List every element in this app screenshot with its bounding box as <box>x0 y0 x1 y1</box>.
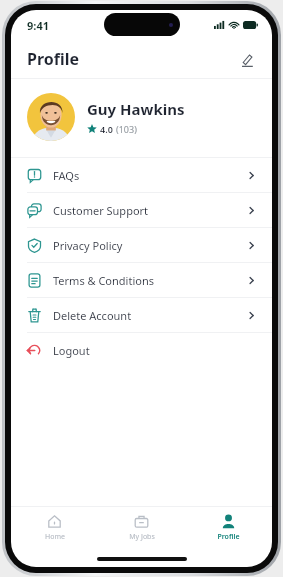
button[interactable]: Customer Support <box>11 193 272 227</box>
staticText: Logout <box>53 343 90 358</box>
button[interactable]: Terms & Conditions <box>11 263 272 297</box>
button[interactable]: Home <box>11 507 98 549</box>
staticText: 9:41 <box>27 18 49 33</box>
staticText: Profile <box>217 532 240 542</box>
button[interactable]: FAQs <box>11 158 272 192</box>
staticText: Guy Hawkins <box>87 99 185 119</box>
staticText: Delete Account <box>53 308 132 323</box>
staticText: Profile <box>27 48 80 70</box>
staticText: Home <box>45 532 65 542</box>
button[interactable]: Logout <box>11 333 272 367</box>
button[interactable]: Privacy Policy <box>11 228 272 262</box>
button[interactable]: My Jobs <box>98 507 185 549</box>
staticText: Customer Support <box>53 203 149 218</box>
button[interactable]: Profile <box>185 507 272 549</box>
button[interactable]: Edit profile <box>232 45 260 73</box>
staticText: Privacy Policy <box>53 238 123 253</box>
staticText: Terms & Conditions <box>53 273 154 288</box>
staticText: 4.0 <box>100 123 113 135</box>
staticText: (103) <box>116 123 137 135</box>
staticText: FAQs <box>53 168 80 183</box>
button[interactable]: Delete Account <box>11 298 272 332</box>
staticText: My Jobs <box>129 532 155 542</box>
